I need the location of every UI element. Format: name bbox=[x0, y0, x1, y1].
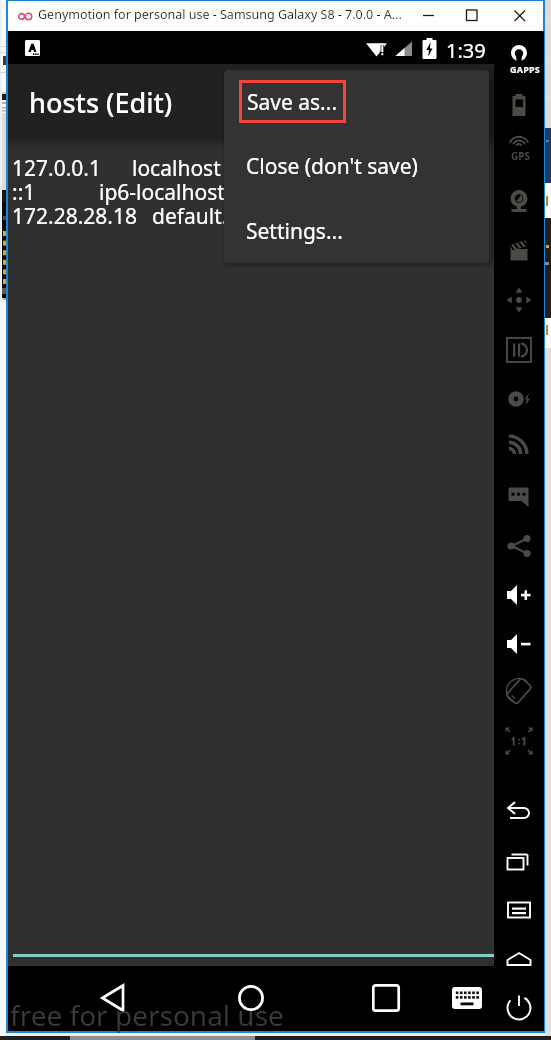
button[interactable]: Back bbox=[497, 790, 541, 834]
staticText: Genymotion for personal use - Samsung Ga… bbox=[38, 6, 402, 23]
button[interactable]: Navigation bbox=[497, 278, 541, 322]
button[interactable]: Battery bbox=[497, 83, 541, 127]
button[interactable]: GPS bbox=[497, 126, 541, 170]
button[interactable]: Keyboard bbox=[445, 976, 489, 1020]
staticText: Save as... bbox=[247, 88, 338, 117]
staticText: Close (don't save) bbox=[246, 152, 418, 181]
staticText: ::1 bbox=[12, 178, 36, 207]
button[interactable]: Share bbox=[497, 524, 541, 568]
button[interactable]: Minimize bbox=[406, 1, 452, 31]
button[interactable]: Identifiers bbox=[497, 328, 541, 372]
button[interactable]: Network bbox=[497, 424, 541, 468]
button[interactable]: SMS bbox=[497, 474, 541, 518]
button[interactable]: GAPPS bbox=[497, 39, 541, 79]
staticText: 127.0.0.1 bbox=[12, 154, 101, 183]
button[interactable]: Home bbox=[497, 937, 541, 981]
staticText: free for personal use bbox=[10, 996, 284, 1034]
staticText: default.internal bbox=[152, 202, 305, 231]
button[interactable]: Record video bbox=[497, 229, 541, 273]
button[interactable]: Rotate bbox=[497, 669, 541, 713]
button[interactable]: Home bbox=[229, 976, 273, 1020]
staticText: hosts (Edit) bbox=[29, 84, 173, 121]
button[interactable]: Volume up bbox=[497, 573, 541, 617]
staticText: Settings... bbox=[246, 217, 343, 246]
button[interactable]: Settings... bbox=[224, 199, 489, 263]
button[interactable]: Disk IO bbox=[497, 377, 541, 421]
staticText: ip6-localhost bbox=[99, 178, 225, 207]
staticText: localhost bbox=[132, 154, 221, 183]
button[interactable]: Back bbox=[94, 976, 138, 1020]
button[interactable]: Volume down bbox=[497, 622, 541, 666]
staticText: 1:39 bbox=[446, 37, 486, 64]
staticText: GPS bbox=[511, 149, 530, 163]
button[interactable]: Close (don't save) bbox=[224, 134, 489, 198]
staticText: 172.28.28.18 bbox=[12, 202, 137, 231]
staticText: GAPPS bbox=[510, 63, 540, 75]
button[interactable]: Scale one to one bbox=[497, 719, 541, 763]
button[interactable]: Save as... bbox=[224, 70, 489, 134]
button[interactable]: Maximize bbox=[449, 1, 495, 31]
button[interactable]: Close bbox=[497, 1, 543, 31]
button[interactable]: Camera bbox=[497, 179, 541, 223]
button[interactable]: Menu bbox=[497, 888, 541, 932]
button[interactable]: Recents bbox=[364, 976, 408, 1020]
button[interactable]: Recents bbox=[497, 839, 541, 883]
button[interactable]: Power bbox=[497, 986, 541, 1030]
